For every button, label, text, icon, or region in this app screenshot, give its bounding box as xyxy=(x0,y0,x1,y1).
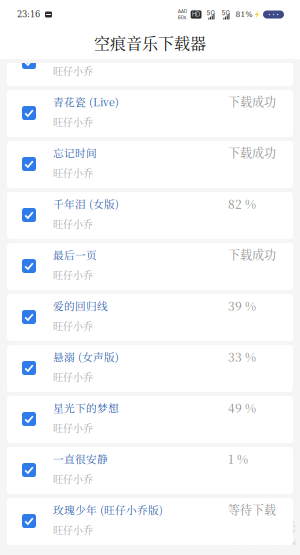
staticText: 星光下的梦想 xyxy=(53,400,119,415)
staticText: 等待下载 xyxy=(228,501,276,518)
button[interactable]: 千年泪 (女版) xyxy=(7,192,293,239)
staticText: 81% xyxy=(235,10,252,19)
staticText: 旺仔小乔 xyxy=(53,217,93,231)
button[interactable]: 忘记时间 xyxy=(7,141,293,188)
button[interactable]: 悬溺 (女声版) xyxy=(7,345,293,392)
staticText: 49 % xyxy=(228,399,256,416)
staticText: 旺仔小乔 xyxy=(53,319,93,333)
staticText: 60s xyxy=(178,15,187,20)
staticText: 旺仔小乔 xyxy=(53,421,93,435)
staticText: 一听下载 xyxy=(185,511,297,551)
staticText: 旺仔小乔 xyxy=(53,370,93,384)
button[interactable]: 一直很安静 xyxy=(7,447,293,494)
staticText: 千年泪 (女版) xyxy=(53,196,119,211)
staticText: 爱的回归线 xyxy=(53,298,108,313)
button[interactable]: 最后一页 xyxy=(7,243,293,290)
staticText: 最后一页 xyxy=(53,247,97,262)
staticText: 82 % xyxy=(228,195,256,212)
button[interactable]: 青花瓷 (Live) xyxy=(7,90,293,137)
button[interactable]: 爱的回归线 xyxy=(7,294,293,341)
staticText: 39 % xyxy=(228,297,256,314)
staticText: 下载成功 xyxy=(228,144,276,161)
staticText: 悬溺 (女声版) xyxy=(53,349,119,364)
staticText: 23:16 xyxy=(17,10,40,19)
staticText: 清明雨上 xyxy=(53,43,97,58)
staticText: 下载成功 xyxy=(228,93,276,110)
button[interactable]: 星光下的梦想 xyxy=(7,396,293,443)
staticText: 5G xyxy=(221,9,230,17)
staticText: 旺仔小乔 xyxy=(53,115,93,129)
staticText: 旺仔小乔 xyxy=(53,523,93,537)
staticText: 1 % xyxy=(228,450,248,467)
button[interactable]: 清明雨上 xyxy=(7,39,293,86)
staticText: 青花瓷 (Live) xyxy=(53,94,119,109)
button[interactable]: 玫瑰少年 (旺仔小乔版) xyxy=(7,498,293,545)
staticText: 一直很安静 xyxy=(53,451,108,466)
staticText: 旺仔小乔 xyxy=(53,166,93,180)
staticText: 旺仔小乔 xyxy=(53,472,93,486)
staticText: 旺仔小乔 xyxy=(53,268,93,282)
staticText: 空痕音乐下载器 xyxy=(94,31,206,54)
staticText: 下载成功 xyxy=(228,246,276,263)
staticText: 旺仔小乔 xyxy=(53,64,93,78)
staticText: AAD xyxy=(178,8,187,14)
staticText: 33 % xyxy=(228,348,256,365)
staticText: 玫瑰少年 (旺仔小乔版) xyxy=(53,502,163,517)
staticText: 5G xyxy=(206,9,215,17)
staticText: HD xyxy=(192,11,200,18)
staticText: 忘记时间 xyxy=(53,145,97,160)
